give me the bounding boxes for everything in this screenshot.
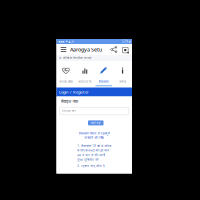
staticText: मोबाइल नंबर — [60, 99, 78, 104]
staticText: Login / Register — [59, 89, 89, 95]
staticText: टीकाकरण — [99, 80, 109, 84]
staticText: क्रम में भाग लें और अपनी — [77, 153, 105, 157]
staticText: 1. टीकाकरण 18 वर्ष से अधिक — [77, 144, 111, 148]
button[interactable]: टीकाकरण — [94, 61, 113, 87]
button[interactable]: Menu — [58, 44, 69, 55]
staticText: आगे बढ़ें — [91, 121, 101, 125]
button[interactable]: आगे बढ़ें — [88, 120, 103, 125]
staticText: जानकारी और निर्देश — [84, 136, 104, 139]
staticText: अधिक — [119, 80, 126, 84]
button[interactable]: आपका स्टेटस — [56, 61, 75, 87]
button[interactable]: Share — [108, 44, 119, 55]
staticText: आसपास के — [78, 80, 91, 84]
staticText: Aarogya Setu — [70, 46, 102, 53]
button[interactable]: Scan QR code — [119, 44, 130, 55]
staticText: 2. न्यूनतम आयु सीमा है — [77, 164, 104, 168]
staticText: मोबाइल नंबर — [62, 109, 76, 113]
staticText: 52% ▮ — [122, 40, 130, 43]
staticText: कोविड के लिए टीका लगवाएं — [63, 56, 91, 60]
button[interactable]: आसपास के — [75, 61, 94, 87]
button[interactable]: टीकाकरण विभाग से महत्वपूर्ण — [56, 125, 132, 139]
staticText: के लिए उपलब्ध है और इस कार्य — [77, 149, 109, 152]
staticText: सुरक्षा सुनिश्चित करें — [77, 158, 98, 161]
staticText: ▪▪▪ ⚑ ▲ ✉ — [58, 40, 73, 43]
staticText: टीकाकरण विभाग से महत्वपूर्ण — [79, 132, 110, 135]
button[interactable]: Login / Register — [56, 87, 132, 96]
staticText: आपका स्टेटस — [59, 80, 73, 84]
button[interactable]: अधिक — [113, 61, 132, 87]
